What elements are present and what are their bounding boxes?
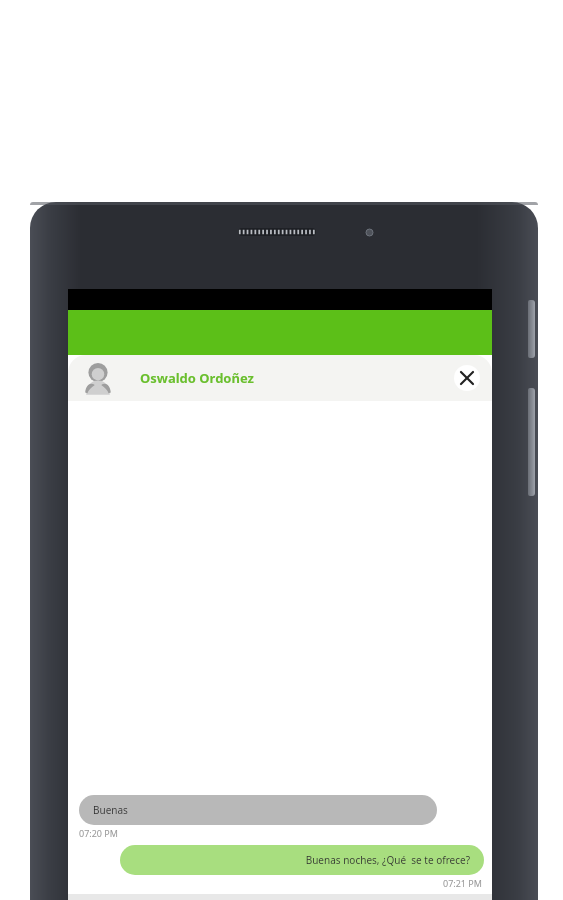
- button[interactable]: Close: [454, 365, 480, 391]
- button[interactable]: Buenas noches, ¿Qué se te ofrece?: [120, 845, 484, 875]
- staticText: Buenas noches, ¿Qué se te ofrece?: [305, 853, 470, 867]
- staticText: 07:20 PM: [79, 827, 118, 839]
- staticText: Buenas: [93, 803, 128, 817]
- button[interactable]: Buenas: [79, 795, 437, 825]
- staticText: 07:21 PM: [443, 877, 482, 889]
- staticText: Oswaldo Ordoñez: [140, 369, 254, 387]
- button[interactable]: Oswaldo Ordoñez: [68, 355, 492, 401]
